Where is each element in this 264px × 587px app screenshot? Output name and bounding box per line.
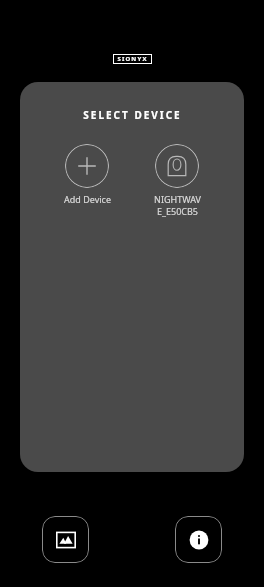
staticText: SIONYX xyxy=(117,55,148,63)
button[interactable]: Information xyxy=(175,516,222,563)
staticText: E_E50CB5 xyxy=(157,205,198,217)
button[interactable]: NIGHTWAVE_E50CB5 camera xyxy=(141,144,213,217)
button[interactable]: Add Device xyxy=(51,144,123,205)
staticText: NIGHTWAV xyxy=(154,193,201,205)
staticText: Add Device xyxy=(64,193,111,205)
button[interactable]: Gallery xyxy=(42,516,89,563)
staticText: SELECT DEVICE xyxy=(83,108,182,122)
